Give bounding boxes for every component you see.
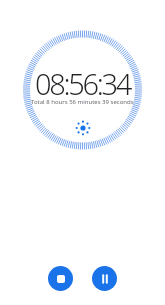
button[interactable] bbox=[48, 266, 73, 291]
staticText: Total 8 hours 56 minutes 39 seconds bbox=[31, 98, 134, 106]
button[interactable] bbox=[92, 266, 117, 291]
staticText: 08:56:34 bbox=[35, 64, 131, 103]
